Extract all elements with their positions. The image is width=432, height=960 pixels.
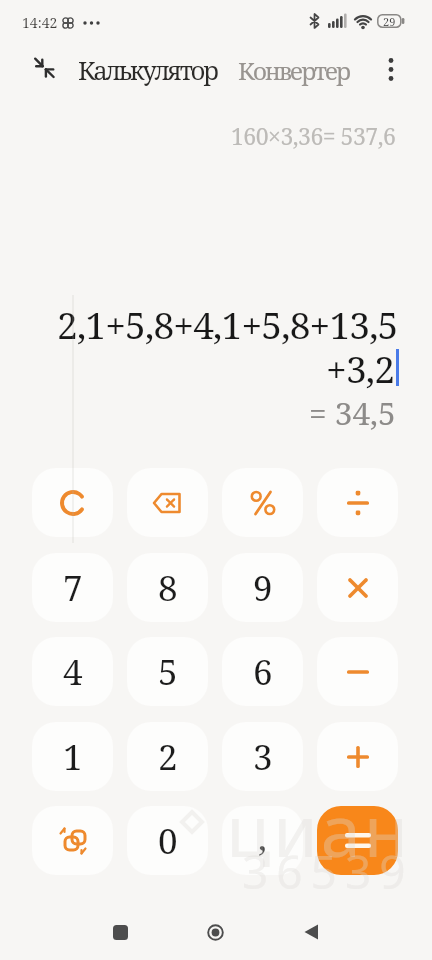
staticText: 14:42	[22, 13, 58, 32]
button[interactable]	[317, 468, 398, 537]
staticText: ,	[258, 813, 267, 861]
button[interactable]: 9	[222, 553, 303, 622]
button[interactable]	[317, 553, 398, 622]
staticText: 29	[383, 14, 396, 29]
staticText: Калькулятор	[78, 53, 217, 87]
button[interactable]: 6	[222, 637, 303, 706]
button[interactable]: 7	[32, 553, 113, 622]
button[interactable]	[32, 468, 113, 537]
button[interactable]: 2	[127, 722, 208, 791]
staticText: 9	[253, 564, 273, 612]
staticText: 0	[158, 817, 178, 865]
staticText: 5	[158, 648, 178, 696]
button[interactable]	[384, 57, 398, 83]
staticText: Конвертер	[238, 54, 350, 87]
button[interactable]	[33, 56, 57, 80]
staticText: 8	[158, 564, 178, 612]
button[interactable]: Калькулятор	[78, 53, 217, 87]
button[interactable]	[317, 806, 398, 875]
button[interactable]	[317, 637, 398, 706]
staticText: 2,1+5,8+4,1+5,8+13,5	[57, 299, 398, 349]
button[interactable]	[32, 806, 113, 875]
staticText: циан	[226, 780, 412, 878]
staticText: 2	[158, 733, 178, 781]
button[interactable]: 3	[222, 722, 303, 791]
staticText: = 34,5	[309, 391, 396, 434]
staticText: 7	[63, 564, 83, 612]
button[interactable]: 8	[127, 553, 208, 622]
button[interactable]: ,	[222, 806, 303, 875]
staticText: 36539	[242, 840, 414, 903]
button[interactable]	[113, 925, 128, 940]
staticText: 160×3,36= 537,6	[231, 120, 396, 151]
staticText: +3,2	[326, 343, 395, 393]
staticText: 1	[63, 733, 83, 781]
button[interactable]	[222, 468, 303, 537]
staticText: 3	[253, 733, 273, 781]
button[interactable]	[127, 468, 208, 537]
button[interactable]: 0	[127, 806, 208, 875]
button[interactable]	[207, 924, 224, 941]
button[interactable]: 5	[127, 637, 208, 706]
staticText: 6	[253, 648, 273, 696]
button[interactable]: 1	[32, 722, 113, 791]
staticText: 4	[63, 648, 83, 696]
button[interactable]: Конвертер	[238, 54, 350, 87]
button[interactable]: 4	[32, 637, 113, 706]
button[interactable]	[303, 924, 319, 940]
button[interactable]	[317, 722, 398, 791]
